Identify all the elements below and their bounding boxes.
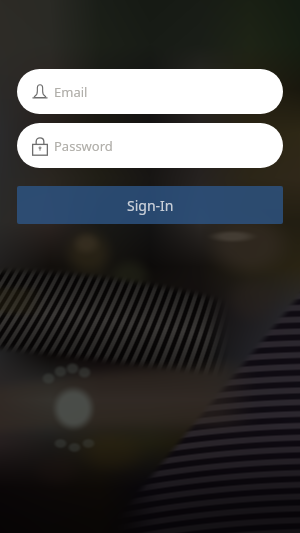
staticText: Sign-In bbox=[127, 196, 174, 215]
staticText: Email bbox=[54, 83, 88, 101]
button[interactable]: Password bbox=[17, 123, 283, 168]
button[interactable]: Email bbox=[17, 69, 283, 114]
other: Password bbox=[32, 136, 48, 156]
staticText: Password bbox=[54, 137, 113, 155]
other: Email bbox=[32, 82, 48, 102]
button[interactable]: Sign-In bbox=[17, 186, 283, 224]
